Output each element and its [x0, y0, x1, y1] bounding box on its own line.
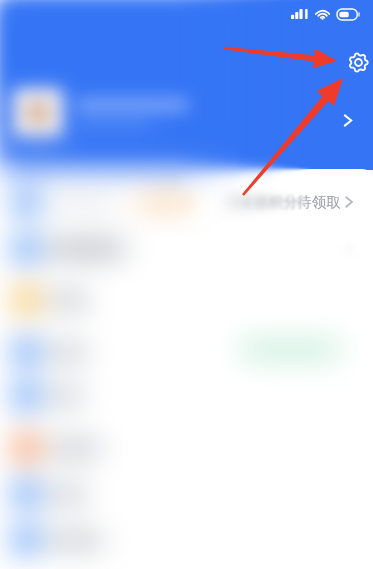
button[interactable]: [0, 433, 373, 463]
button[interactable]: [0, 337, 373, 367]
staticText: 有家庭积分待领取: [225, 193, 341, 211]
staticText: 有家庭积分待领取: [225, 193, 341, 211]
button[interactable]: [0, 381, 373, 411]
button[interactable]: [0, 381, 373, 411]
button[interactable]: [0, 337, 373, 367]
button[interactable]: [0, 231, 373, 267]
button[interactable]: [0, 381, 373, 411]
button[interactable]: [0, 231, 373, 267]
button[interactable]: [0, 525, 373, 555]
button[interactable]: [0, 337, 373, 367]
button[interactable]: [0, 479, 373, 509]
button[interactable]: [0, 479, 373, 509]
button[interactable]: [0, 381, 373, 411]
button[interactable]: [0, 381, 373, 411]
button[interactable]: [0, 525, 373, 555]
button[interactable]: [0, 337, 373, 367]
button[interactable]: [0, 433, 373, 463]
button[interactable]: [0, 337, 373, 367]
button[interactable]: [0, 381, 373, 411]
button[interactable]: [0, 285, 373, 315]
button[interactable]: [0, 525, 373, 555]
button[interactable]: 有家庭积分待领取: [0, 184, 373, 220]
button[interactable]: [0, 525, 373, 555]
staticText: 有家庭积分待领取: [225, 193, 341, 211]
button[interactable]: [0, 285, 373, 315]
button[interactable]: [0, 525, 373, 555]
button[interactable]: 有家庭积分待领取: [0, 184, 373, 220]
button[interactable]: Settings: [348, 52, 369, 73]
button[interactable]: [0, 337, 373, 367]
button[interactable]: [0, 285, 373, 315]
button[interactable]: [0, 525, 373, 555]
button[interactable]: [0, 433, 373, 463]
button[interactable]: [0, 433, 373, 463]
button[interactable]: [0, 479, 373, 509]
staticText: 有家庭积分待领取: [225, 193, 341, 211]
button[interactable]: [0, 285, 373, 315]
button[interactable]: [0, 231, 373, 267]
button[interactable]: 有家庭积分待领取: [0, 184, 373, 220]
staticText: 有家庭积分待领取: [225, 193, 341, 211]
button[interactable]: 有家庭积分待领取: [0, 184, 373, 220]
button[interactable]: [0, 231, 373, 267]
button[interactable]: [0, 479, 373, 509]
button[interactable]: [0, 231, 373, 267]
button[interactable]: 有家庭积分待领取: [0, 184, 373, 220]
button[interactable]: [0, 433, 373, 463]
button[interactable]: [0, 231, 373, 267]
button[interactable]: 有家庭积分待领取: [0, 184, 373, 220]
button[interactable]: [0, 479, 373, 509]
button[interactable]: [0, 433, 373, 463]
staticText: 有家庭积分待领取: [225, 193, 341, 211]
button[interactable]: [0, 479, 373, 509]
button[interactable]: [0, 285, 373, 315]
button[interactable]: [0, 285, 373, 315]
